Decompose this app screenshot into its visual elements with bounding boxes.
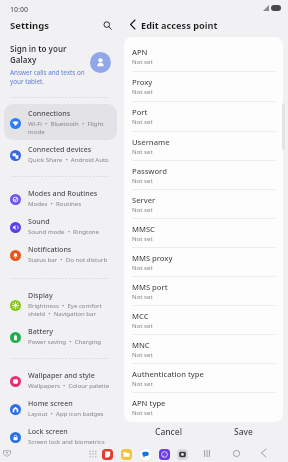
button[interactable]: Camera [177, 449, 188, 460]
staticText: Home screen [28, 398, 73, 408]
staticText: Layout • App icon badges [28, 409, 104, 417]
staticText: Connections [28, 108, 71, 118]
staticText: APN [132, 47, 148, 57]
staticText: APN type [132, 398, 166, 408]
button[interactable]: Hide keyboard [1, 447, 13, 459]
staticText: Not set [132, 350, 153, 358]
button[interactable]: MCC [124, 306, 283, 335]
button[interactable]: Wallpaper and style [4, 366, 117, 394]
staticText: Wallpaper and style [28, 370, 95, 380]
button[interactable]: Search [99, 17, 116, 34]
staticText: Not set [132, 87, 153, 95]
staticText: Password [132, 166, 167, 176]
staticText: Not set [132, 117, 153, 125]
staticText: Status bar • Do not disturb [28, 255, 108, 263]
staticText: Notifications [28, 244, 72, 254]
button[interactable]: Port [124, 102, 283, 132]
staticText: Edit access point [141, 19, 218, 32]
staticText: Cancel [155, 426, 182, 438]
button[interactable]: Internet [159, 449, 170, 460]
staticText: Screen lock and biometrics [28, 437, 105, 445]
button[interactable]: MMSC [124, 219, 283, 248]
staticText: 10:00 [10, 5, 28, 15]
button[interactable]: Sign in to your Galaxy [0, 38, 124, 86]
button[interactable]: Notifications [4, 240, 117, 268]
staticText: Quick Share • Android Auto [28, 155, 109, 163]
button[interactable]: Modes and Routines [4, 184, 117, 212]
staticText: Modes • Routines [28, 199, 82, 207]
staticText: Username [132, 137, 170, 147]
button[interactable]: Save [213, 424, 273, 440]
staticText: Answer calls and texts on your tablet. [10, 68, 85, 86]
button[interactable]: Username [124, 132, 283, 161]
staticText: Sound mode • Ringtone [28, 227, 100, 235]
button[interactable]: Samsung Notes [102, 449, 113, 460]
staticText: Not set [132, 57, 153, 65]
staticText: Authentication type [132, 369, 204, 379]
button[interactable]: Display [4, 286, 117, 322]
staticText: Server [132, 195, 156, 205]
staticText: Not set [132, 379, 153, 387]
staticText: Not set [132, 176, 153, 184]
button[interactable]: Proxy [124, 72, 283, 102]
button[interactable]: Password [124, 161, 283, 190]
button[interactable]: MNC [124, 335, 283, 364]
staticText: MNC [132, 340, 150, 350]
staticText: Wi-Fi • Bluetooth • Flight mode [28, 119, 104, 136]
staticText: Wallpapers • Colour palette [28, 381, 110, 389]
staticText: Not set [132, 321, 153, 329]
button[interactable]: Back [256, 446, 270, 460]
staticText: Proxy [132, 77, 153, 87]
staticText: MCC [132, 311, 149, 321]
staticText: Not set [132, 408, 153, 416]
staticText: Sign in to your Galaxy [10, 43, 67, 65]
button[interactable]: My Files [121, 449, 132, 460]
button[interactable]: Home screen [4, 394, 117, 422]
button[interactable]: Sound [4, 212, 117, 240]
staticText: Battery [28, 326, 53, 336]
button[interactable]: Back [124, 16, 140, 32]
button[interactable]: Cancel [138, 424, 198, 440]
staticText: MMS proxy [132, 253, 173, 263]
staticText: Not set [132, 263, 153, 271]
staticText: Not set [132, 147, 153, 155]
button[interactable]: Server [124, 190, 283, 219]
staticText: Not set [132, 234, 153, 242]
button[interactable]: MMS port [124, 277, 283, 306]
staticText: MMS port [132, 282, 168, 292]
button[interactable]: APN type [124, 393, 283, 422]
staticText: Lock screen [28, 426, 68, 436]
staticText: Connected devices [28, 144, 92, 154]
button[interactable]: Connected devices [4, 140, 117, 168]
staticText: Save [234, 426, 253, 438]
button[interactable]: APN [124, 42, 283, 72]
staticText: Settings [10, 19, 49, 32]
staticText: Modes and Routines [28, 188, 98, 198]
button[interactable]: Battery [4, 322, 117, 350]
staticText: Power saving • Charging [28, 337, 102, 345]
button[interactable]: Messages [140, 449, 151, 460]
staticText: Display [28, 290, 53, 300]
staticText: Not set [132, 205, 153, 213]
staticText: MMSC [132, 224, 155, 234]
button[interactable]: Authentication type [124, 364, 283, 393]
button[interactable]: Recents [200, 446, 214, 460]
button[interactable]: MMS proxy [124, 248, 283, 277]
staticText: Port [132, 107, 148, 117]
button[interactable]: All apps [89, 450, 97, 458]
staticText: Not set [132, 292, 153, 300]
button[interactable]: Connections [4, 104, 117, 140]
staticText: Brightness • Eye comfort shield • Naviga… [28, 301, 102, 318]
button[interactable]: Home [229, 446, 243, 460]
staticText: Sound [28, 216, 50, 226]
button[interactable]: Lock screen [4, 422, 117, 450]
